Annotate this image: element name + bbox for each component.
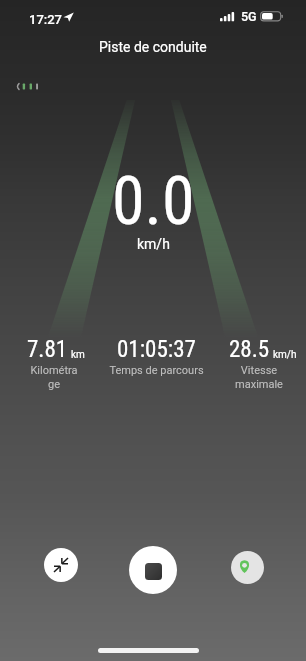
staticText: 7.81 (27, 336, 68, 363)
staticText: Kilométra ge (30, 364, 78, 391)
button[interactable]: Réduire (44, 548, 78, 582)
staticText: km/h (137, 236, 170, 252)
staticText: 5G (241, 9, 257, 24)
staticText: km/h (273, 349, 297, 361)
staticText: Vitesse maximale (235, 364, 283, 391)
button[interactable]: Arrêter (129, 546, 177, 594)
staticText: km (71, 349, 85, 361)
staticText: 28.5 (229, 336, 270, 363)
staticText: Temps de parcours (109, 364, 204, 377)
staticText: 01:05:37 (117, 336, 196, 363)
staticText: 0.0 (112, 163, 195, 240)
button[interactable]: Ma position (231, 551, 264, 584)
staticText: 17:27 (29, 12, 63, 27)
staticText: Piste de conduite (99, 39, 207, 55)
